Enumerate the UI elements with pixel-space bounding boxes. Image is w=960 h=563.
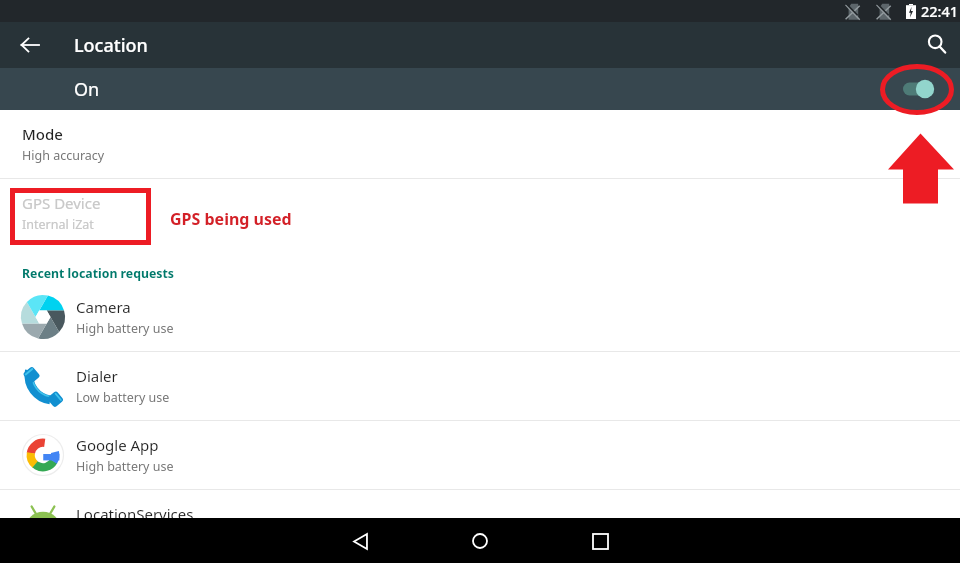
button[interactable]: Home — [458, 519, 502, 563]
button[interactable]: Mode — [0, 110, 960, 178]
button[interactable]: Back — [12, 27, 48, 63]
button[interactable]: GPS Device — [0, 179, 960, 247]
staticText: Recent location requests — [22, 265, 174, 282]
staticText: High accuracy — [22, 147, 105, 164]
button[interactable]: Recent apps — [578, 519, 622, 563]
button[interactable]: Search — [919, 27, 955, 63]
button[interactable]: Google App — [0, 421, 960, 489]
staticText: High battery use — [76, 320, 174, 337]
button[interactable]: On — [0, 68, 960, 110]
staticText: LocationServices — [76, 504, 194, 524]
staticText: On — [74, 77, 100, 102]
staticText: Google App — [76, 435, 159, 455]
staticText: Mode — [22, 124, 63, 144]
staticText: Low battery use — [76, 389, 170, 406]
button[interactable]: Camera — [0, 283, 960, 351]
staticText: GPS Device — [22, 193, 101, 213]
staticText: Camera — [76, 297, 131, 317]
staticText: Dialer — [76, 366, 118, 386]
staticText: Internal iZat — [22, 216, 94, 233]
staticText: High battery use — [76, 458, 174, 475]
button[interactable]: Back — [338, 519, 382, 563]
staticText: Location — [74, 33, 148, 58]
button[interactable]: LocationServices — [0, 490, 960, 558]
staticText: 22:41 — [921, 1, 959, 21]
button[interactable]: Dialer — [0, 352, 960, 420]
staticText: GPS being used — [170, 208, 292, 230]
